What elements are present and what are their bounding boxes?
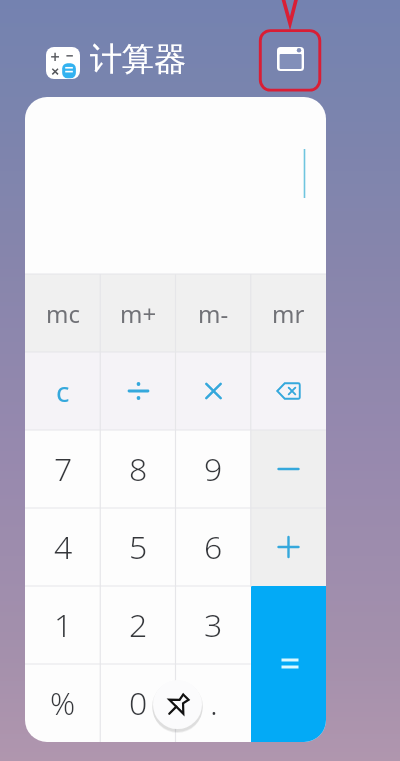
button[interactable]: Equals [251,586,326,742]
button[interactable]: Window mode [259,28,320,90]
staticText: 8 [129,447,148,491]
button[interactable]: 2 [101,586,176,664]
staticText: 6 [204,525,223,569]
button[interactable]: m- [176,274,251,352]
staticText: % [50,682,76,724]
button[interactable]: . [176,664,251,742]
staticText: 5 [129,525,148,569]
staticText: c [56,372,70,410]
button[interactable]: 8 [101,430,176,508]
button[interactable]: mc [25,274,101,352]
staticText: mc [46,297,80,330]
button[interactable]: 7 [25,430,101,508]
staticText: m- [198,297,229,330]
button[interactable]: m+ [101,274,176,352]
staticText: 2 [129,603,148,647]
staticText: 1 [54,603,73,647]
button[interactable]: Minus [251,430,326,508]
button[interactable]: Multiply [176,352,251,430]
staticText: 3 [204,603,223,647]
button[interactable]: % [25,664,101,742]
button[interactable]: Backspace [251,352,326,430]
button[interactable]: Divide [101,352,176,430]
button[interactable]: 1 [25,586,101,664]
button[interactable]: c [25,352,101,430]
button[interactable]: 6 [176,508,251,586]
button[interactable]: 5 [101,508,176,586]
staticText: 7 [54,447,73,491]
staticText: m+ [120,297,157,330]
staticText: 0 [129,681,148,725]
button[interactable]: Pin [153,680,202,729]
staticText: 计算器 [90,39,186,79]
button[interactable]: mr [251,274,326,352]
staticText: 9 [204,447,223,491]
button[interactable]: 0 [101,664,176,742]
staticText: 4 [54,525,73,569]
button[interactable]: 4 [25,508,101,586]
button[interactable]: 9 [176,430,251,508]
staticText: . [210,681,218,725]
staticText: mr [272,297,305,330]
button[interactable]: Plus [251,508,326,586]
button[interactable]: 3 [176,586,251,664]
